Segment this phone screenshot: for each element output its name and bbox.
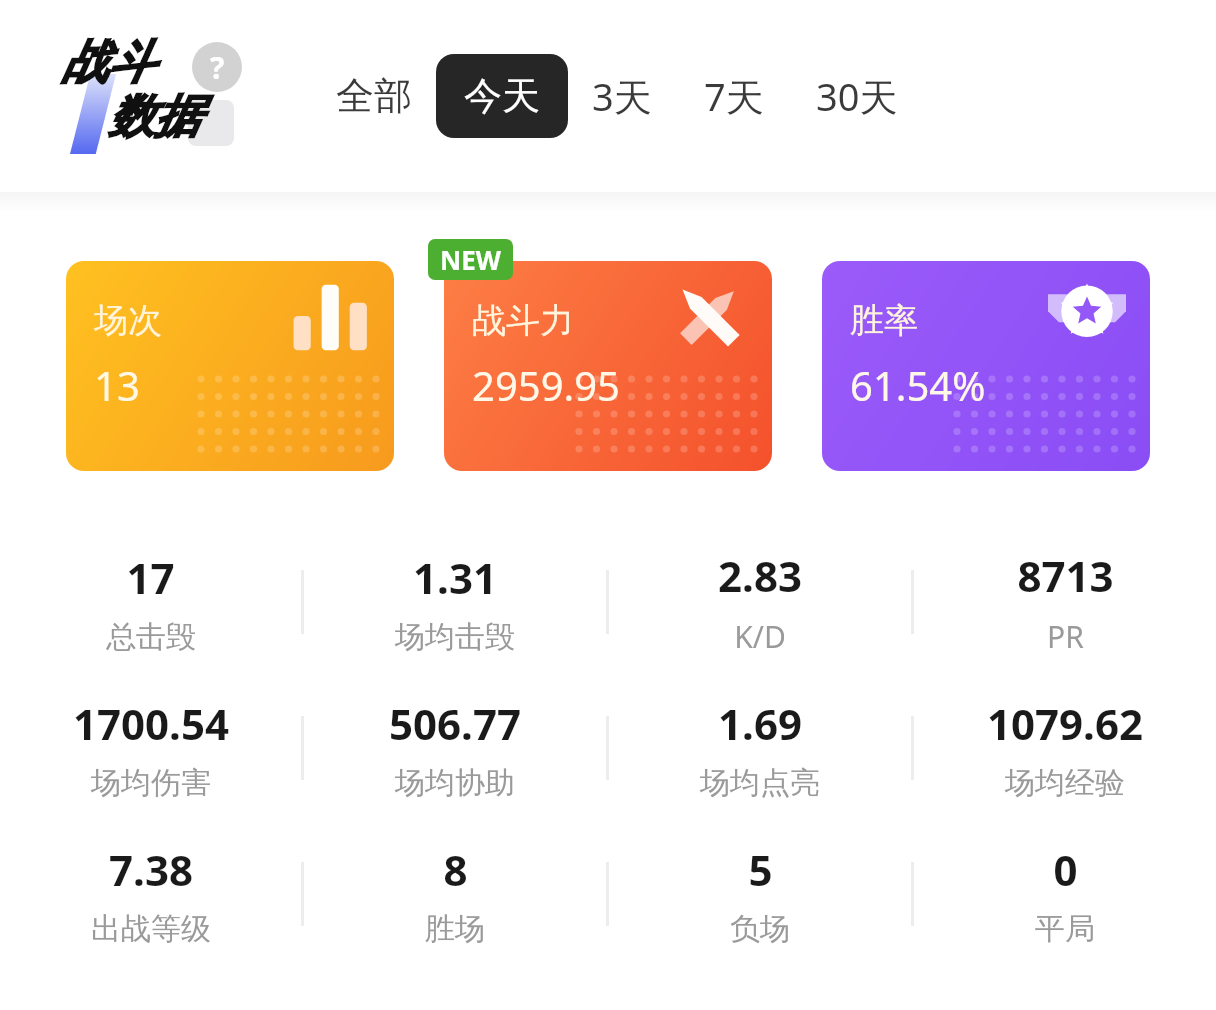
staticText: 出战等级: [91, 910, 211, 948]
staticText: 场均经验: [1005, 764, 1125, 802]
button[interactable]: 1.31: [304, 529, 606, 675]
button[interactable]: 8: [304, 821, 606, 967]
button[interactable]: 8713: [914, 529, 1216, 675]
staticText: 战斗: [62, 34, 154, 92]
staticText: 13: [94, 358, 140, 412]
button[interactable]: 0: [914, 821, 1216, 967]
staticText: 场均击毁: [395, 618, 515, 656]
staticText: 506.77: [389, 695, 521, 752]
button[interactable]: 2.83: [609, 529, 911, 675]
staticText: 8713: [1017, 547, 1114, 604]
button[interactable]: 30天: [800, 52, 914, 140]
staticText: 1.31: [413, 549, 497, 606]
button[interactable]: 1079.62: [914, 675, 1216, 821]
staticText: 2959.95: [472, 358, 620, 412]
staticText: 7天: [704, 70, 764, 122]
staticText: K/D: [734, 616, 786, 657]
button[interactable]: 场次: [66, 261, 394, 471]
staticText: ?: [210, 47, 225, 88]
staticText: 场均点亮: [700, 764, 820, 802]
button[interactable]: 战斗力: [444, 261, 772, 471]
staticText: PR: [1047, 616, 1084, 657]
staticText: 5: [748, 841, 773, 898]
staticText: 1.69: [718, 695, 802, 752]
staticText: 场均伤害: [91, 764, 211, 802]
staticText: 负场: [730, 910, 790, 948]
staticText: NEW: [440, 242, 501, 277]
button[interactable]: Help: [192, 42, 242, 92]
staticText: 数据: [108, 88, 200, 146]
staticText: 胜场: [425, 910, 485, 948]
button[interactable]: 今天: [436, 54, 568, 138]
staticText: 场次: [94, 299, 162, 342]
staticText: 战斗力: [472, 299, 574, 342]
button[interactable]: 3天: [576, 52, 668, 140]
button[interactable]: 战斗数据: [62, 34, 250, 158]
button[interactable]: 17: [0, 529, 301, 675]
staticText: 今天: [464, 72, 540, 120]
button[interactable]: 7.38: [0, 821, 301, 967]
staticText: 30天: [816, 70, 898, 122]
staticText: 平局: [1035, 910, 1095, 948]
button[interactable]: 胜率: [822, 261, 1150, 471]
staticText: 全部: [336, 72, 412, 120]
staticText: 总击毁: [106, 618, 196, 656]
staticText: 1079.62: [987, 695, 1143, 752]
button[interactable]: 7天: [688, 52, 780, 140]
button[interactable]: 1700.54: [0, 675, 301, 821]
staticText: 61.54%: [850, 358, 986, 412]
staticText: 场均协助: [395, 764, 515, 802]
button[interactable]: 全部: [320, 54, 428, 138]
staticText: 3天: [592, 70, 652, 122]
staticText: 胜率: [850, 299, 918, 342]
staticText: 17: [126, 549, 175, 606]
staticText: 1700.54: [73, 695, 229, 752]
staticText: 0: [1053, 841, 1078, 898]
staticText: 7.38: [109, 841, 193, 898]
button[interactable]: 506.77: [304, 675, 606, 821]
staticText: 2.83: [718, 547, 802, 604]
staticText: 8: [443, 841, 468, 898]
button[interactable]: 5: [609, 821, 911, 967]
button[interactable]: 1.69: [609, 675, 911, 821]
